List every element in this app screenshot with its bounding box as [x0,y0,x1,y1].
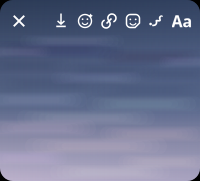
button[interactable]: Stickers [121,8,145,34]
button[interactable]: Add a link [97,8,121,34]
button[interactable]: Save to device [49,8,73,34]
button[interactable]: Draw [145,8,169,34]
button[interactable]: Close [7,8,31,34]
button[interactable]: Add text [169,8,195,34]
staticText: Aa [171,10,192,32]
button[interactable]: Add a sticker [73,8,97,34]
